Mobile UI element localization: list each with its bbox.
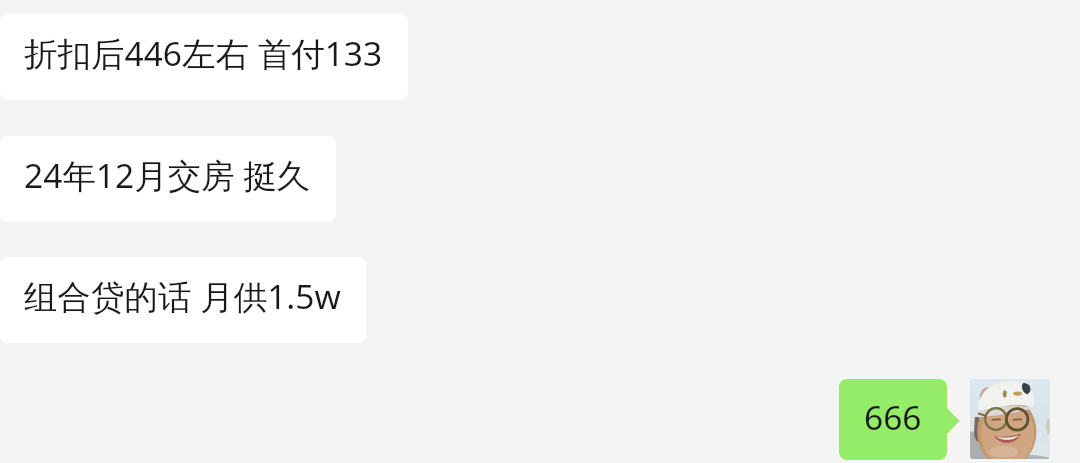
staticText: 666 <box>864 396 922 439</box>
button[interactable]: Avatar <box>970 379 1050 459</box>
staticText: 组合贷的话 月供1.5w <box>24 272 341 321</box>
button[interactable]: 折扣后446左右 首付133 <box>0 14 408 100</box>
staticText: 折扣后446左右 首付133 <box>24 29 383 78</box>
staticText: 24年12月交房 挺久 <box>24 151 311 200</box>
button[interactable]: 666 <box>839 379 947 460</box>
button[interactable]: 组合贷的话 月供1.5w <box>0 257 366 343</box>
button[interactable]: 24年12月交房 挺久 <box>0 136 336 222</box>
